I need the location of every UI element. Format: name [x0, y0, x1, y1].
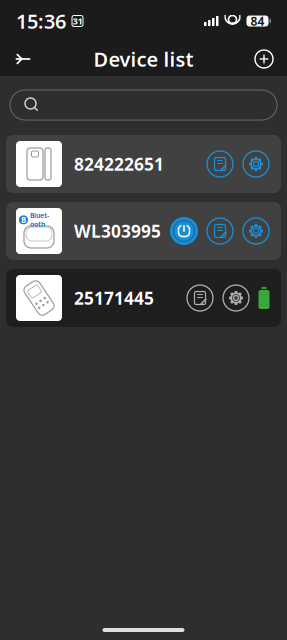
staticText: Bluetooth [30, 211, 49, 229]
staticText: Device list [93, 46, 193, 72]
button[interactable]: 25171445 [6, 269, 281, 327]
button[interactable]: Settings for WL303995 [241, 216, 271, 246]
button[interactable]: Add device [247, 42, 281, 76]
staticText: 15:36 [16, 8, 66, 34]
button[interactable]: Settings for 25171445 [221, 283, 251, 313]
staticText: WL303995 [74, 219, 161, 242]
button[interactable]: Settings for 824222651 [241, 149, 271, 179]
button[interactable]: 824222651 [6, 135, 281, 193]
staticText: 31 [72, 15, 82, 27]
button[interactable]: Back [6, 42, 40, 76]
button[interactable]: Search [10, 90, 277, 120]
staticText: 84 [250, 13, 264, 29]
button[interactable]: Edit 25171445 [185, 283, 215, 313]
staticText: 25171445 [74, 286, 154, 309]
button[interactable]: Edit WL303995 [205, 216, 235, 246]
staticText: 824222651 [74, 152, 164, 175]
button[interactable]: B [6, 202, 281, 260]
button[interactable]: Power [169, 216, 199, 246]
staticText: B [21, 214, 26, 225]
button[interactable]: Edit 824222651 [205, 149, 235, 179]
